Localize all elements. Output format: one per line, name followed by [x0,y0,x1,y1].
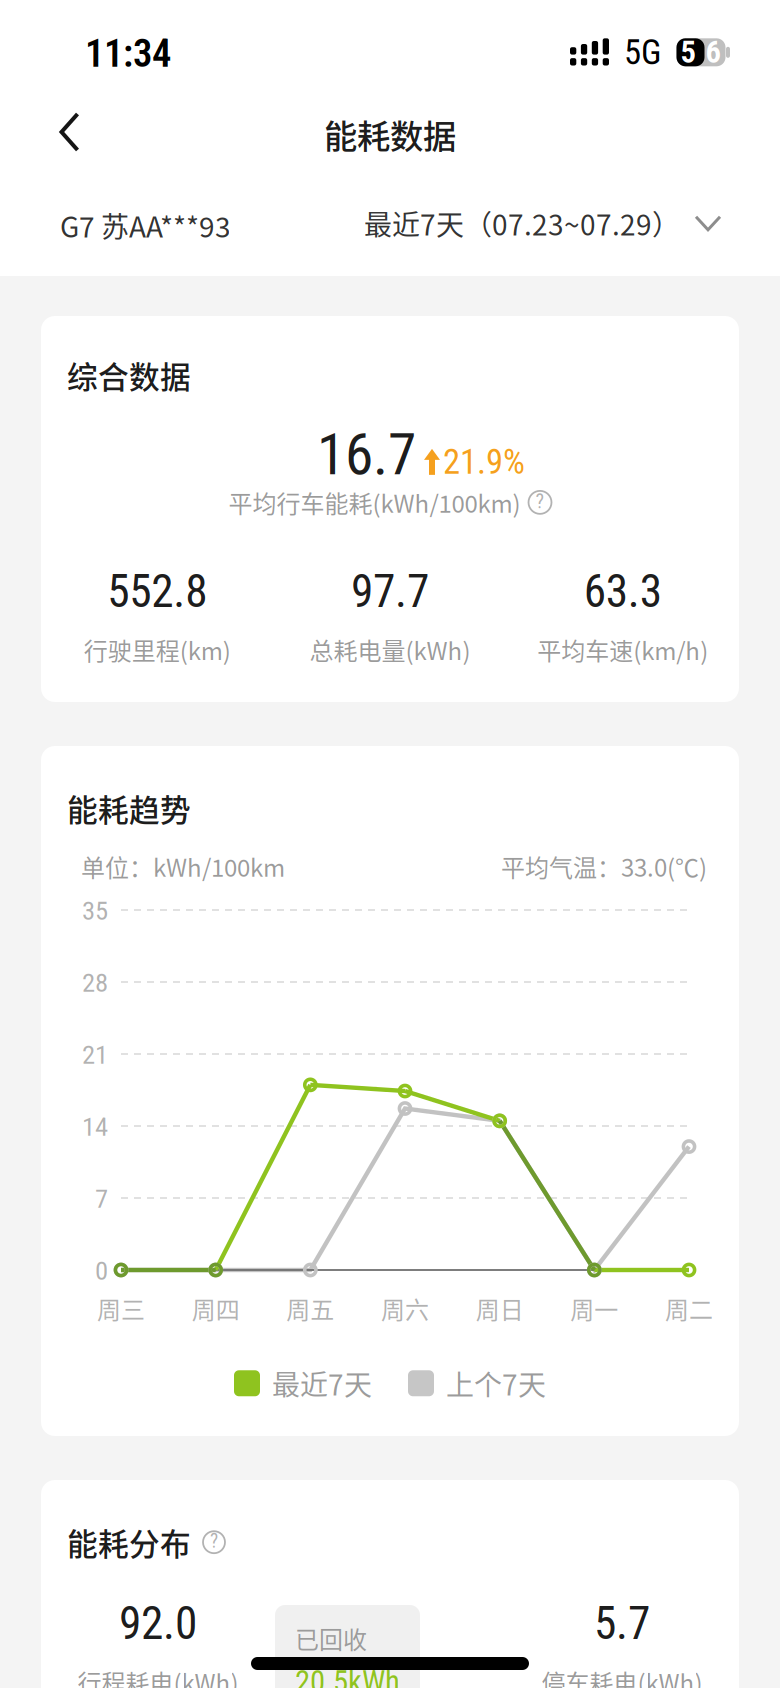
staticText: 周三 [97,1291,145,1326]
staticText: ? [535,489,544,513]
staticText: 21 [82,1039,108,1070]
staticText: G7 苏AA***93 [60,205,231,245]
staticText: 16.7 [317,421,416,488]
staticText: 能耗分布 [67,1520,191,1564]
staticText: 能耗趋势 [67,786,191,830]
staticText: 行驶里程(km) [84,632,231,667]
staticText: 平均行车能耗(kWh/100km) [228,485,520,520]
staticText: 21.9% [443,442,525,482]
staticText: 28 [82,967,108,998]
staticText: ? [210,1530,218,1553]
staticText: 92.0 [119,1597,197,1650]
staticText: 周日 [476,1291,524,1326]
staticText: 能耗数据 [324,110,456,158]
staticText: 周六 [381,1291,429,1326]
staticText: 14 [82,1111,108,1142]
staticText: 周二 [665,1291,713,1326]
staticText: 63.3 [584,565,662,618]
staticText: 7 [95,1183,108,1214]
staticText: 平均车速(km/h) [537,632,708,667]
staticText: 35 [82,895,108,926]
staticText: 行程耗电(kWh) [77,1664,238,1688]
staticText: 552.8 [107,565,207,618]
staticText: 5G [624,32,661,73]
staticText: 停车耗电(kWh) [541,1664,702,1688]
staticText: 已回收 [295,1621,367,1656]
staticText: 周四 [192,1291,240,1326]
staticText: 11:34 [85,31,171,76]
staticText: 最近7天（07.23~07.29） [364,203,680,243]
staticText: 综合数据 [67,353,191,397]
staticText: 6 [705,34,720,70]
staticText: 5 [680,34,695,70]
staticText: 单位：kWh/100km [81,849,285,884]
staticText: 97.7 [351,565,429,618]
staticText: 最近7天 [272,1363,372,1403]
staticText: 0 [95,1255,108,1286]
staticText: 周五 [286,1291,334,1326]
staticText: 上个7天 [446,1363,546,1403]
staticText: 总耗电量(kWh) [309,632,470,667]
button[interactable]: 最近7天（07.23~07.29） [364,203,722,243]
button[interactable]: Back [31,93,109,171]
staticText: 5.7 [594,1597,650,1650]
staticText: 20.5kWh [295,1664,400,1688]
staticText: 周一 [570,1291,618,1326]
staticText: 平均气温：33.0(℃) [501,849,707,884]
